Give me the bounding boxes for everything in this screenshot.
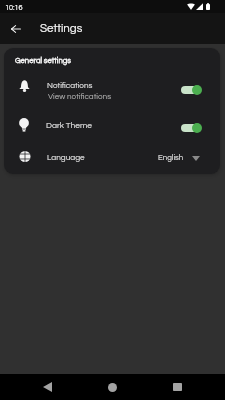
button[interactable]: Language [4, 146, 220, 170]
staticText: English [158, 154, 184, 162]
staticText: Settings [40, 23, 83, 35]
button[interactable]: Notifications toggle [181, 85, 202, 95]
staticText: Language [47, 153, 85, 161]
staticText: 10:16 [5, 4, 23, 12]
button[interactable]: Back [5, 18, 27, 40]
button[interactable]: Dark theme toggle [181, 123, 202, 133]
staticText: Notifications [47, 81, 93, 89]
button[interactable]: English [155, 148, 211, 168]
staticText: Dark Theme [46, 121, 92, 130]
staticText: View notifications [48, 92, 112, 100]
button[interactable]: Dark Theme [4, 114, 220, 138]
button[interactable]: Back [21, 374, 73, 400]
button[interactable]: Notifications [4, 76, 220, 102]
button[interactable]: Recent apps [151, 374, 203, 400]
staticText: General settings [15, 57, 72, 65]
button[interactable]: Home [86, 374, 138, 400]
